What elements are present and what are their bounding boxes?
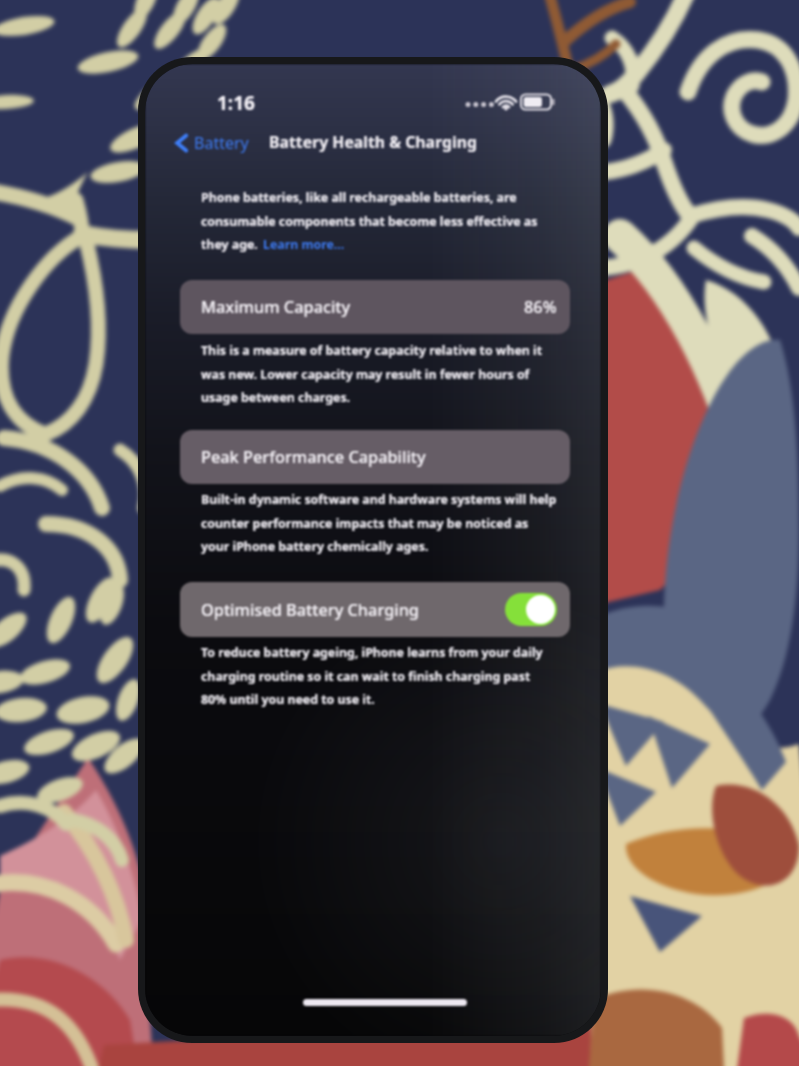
staticText: your iPhone battery chemically ages.: [201, 538, 429, 555]
staticText: Optimised Battery Charging: [201, 599, 419, 621]
staticText: Maximum Capacity: [201, 296, 351, 318]
staticText: charging routine so it can wait to finis…: [201, 668, 531, 685]
button[interactable]: Learn more...: [263, 236, 345, 253]
staticText: This is a measure of battery capacity re…: [201, 342, 543, 359]
button[interactable]: Optimised Battery Charging: [180, 582, 570, 637]
staticText: Peak Performance Capability: [201, 446, 426, 468]
staticText: they age.: [201, 236, 258, 253]
staticText: was new. Lower capacity may result in fe…: [201, 366, 530, 383]
staticText: consumable components that become less e…: [201, 213, 538, 230]
staticText: Battery: [194, 132, 249, 154]
button[interactable]: Battery: [172, 130, 252, 156]
staticText: usage between charges.: [201, 389, 351, 406]
staticText: 80% until you need to use it.: [201, 691, 375, 708]
button[interactable]: Optimised Battery Charging toggle: [505, 593, 557, 626]
staticText: Built-in dynamic software and hardware s…: [201, 491, 557, 508]
staticText: 1:16: [217, 90, 255, 116]
staticText: counter performance impacts that may be …: [201, 515, 529, 532]
staticText: 86%: [524, 296, 557, 318]
staticText: Learn more...: [263, 236, 345, 253]
button[interactable]: Peak Performance Capability: [180, 430, 570, 484]
staticText: Battery Health & Charging: [269, 131, 477, 153]
staticText: Phone batteries, like all rechargeable b…: [201, 189, 517, 206]
staticText: To reduce battery ageing, iPhone learns …: [201, 644, 543, 661]
button[interactable]: Maximum Capacity: [180, 280, 570, 334]
